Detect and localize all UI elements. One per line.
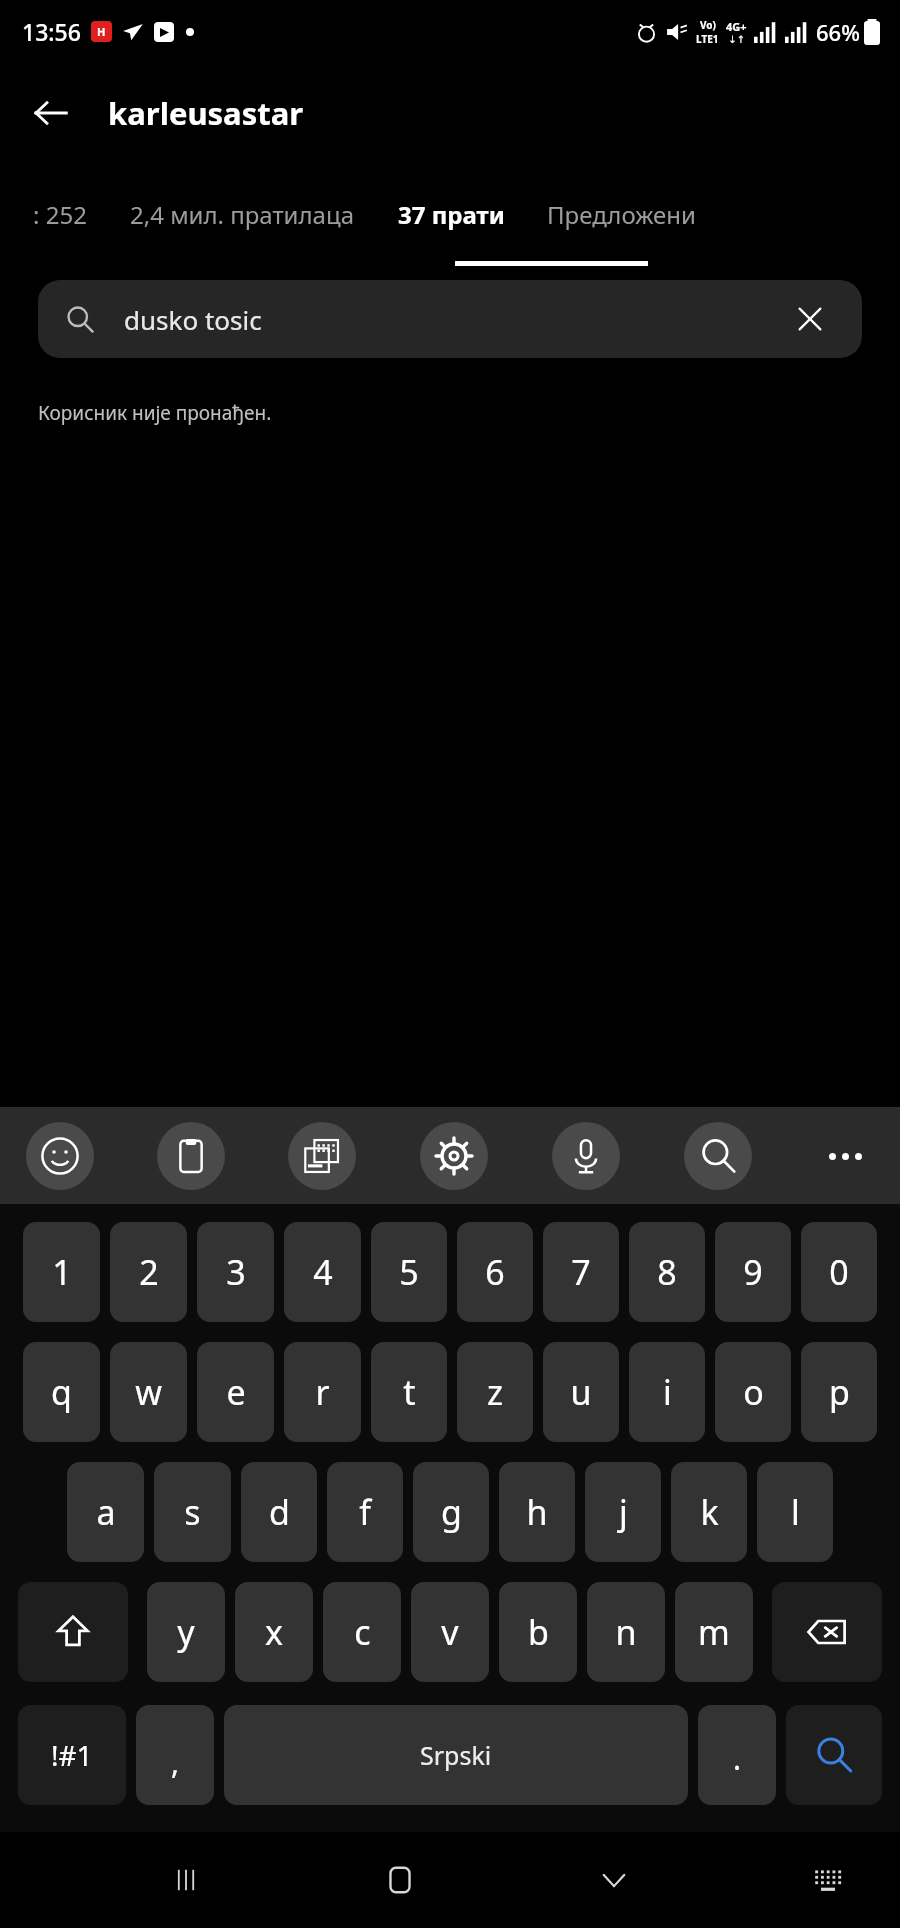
button[interactable]: Keyboard mode: [288, 1122, 356, 1190]
button[interactable]: Recent apps: [150, 1844, 222, 1916]
button[interactable]: 5: [371, 1222, 447, 1322]
button[interactable]: l: [757, 1462, 833, 1562]
button[interactable]: q: [23, 1342, 100, 1442]
button[interactable]: p: [801, 1342, 877, 1442]
staticText: g: [441, 1489, 462, 1535]
button[interactable]: : 252: [0, 163, 120, 266]
button[interactable]: Hide keyboard: [578, 1844, 650, 1916]
staticText: 7: [571, 1249, 591, 1295]
staticText: d: [269, 1489, 290, 1535]
staticText: n: [615, 1609, 637, 1655]
button[interactable]: More options: [816, 1127, 874, 1185]
staticText: Vo): [700, 18, 716, 32]
staticText: 9: [743, 1249, 763, 1295]
staticText: q: [51, 1369, 72, 1415]
staticText: y: [177, 1609, 195, 1655]
button[interactable]: Shift: [18, 1582, 128, 1682]
button[interactable]: f: [327, 1462, 403, 1562]
staticText: p: [829, 1369, 850, 1415]
button[interactable]: Search: [684, 1122, 752, 1190]
staticText: Корисник није пронађен.: [38, 400, 272, 426]
staticText: r: [315, 1369, 330, 1415]
button[interactable]: 0: [801, 1222, 877, 1322]
button[interactable]: o: [715, 1342, 791, 1442]
button[interactable]: 37 прати: [398, 163, 505, 266]
button[interactable]: dusko tosic: [38, 280, 862, 358]
staticText: s: [184, 1489, 201, 1535]
button[interactable]: 7: [543, 1222, 619, 1322]
button[interactable]: 3: [197, 1222, 274, 1322]
staticText: o: [743, 1369, 764, 1415]
button[interactable]: r: [284, 1342, 361, 1442]
staticText: e: [226, 1369, 246, 1415]
staticText: H: [97, 24, 106, 39]
button[interactable]: Settings: [420, 1122, 488, 1190]
staticText: m: [698, 1609, 730, 1655]
button[interactable]: c: [323, 1582, 401, 1682]
staticText: Предложени: [547, 198, 696, 231]
staticText: x: [265, 1609, 283, 1655]
button[interactable]: e: [197, 1342, 274, 1442]
staticText: 66%: [816, 17, 860, 47]
button[interactable]: Back: [18, 80, 84, 146]
button[interactable]: Clear search: [788, 297, 832, 341]
staticText: v: [441, 1609, 459, 1655]
staticText: 37 прати: [398, 198, 505, 231]
button[interactable]: a: [67, 1462, 144, 1562]
staticText: w: [135, 1369, 162, 1415]
button[interactable]: h: [499, 1462, 575, 1562]
button[interactable]: b: [499, 1582, 577, 1682]
button[interactable]: v: [411, 1582, 489, 1682]
button[interactable]: s: [154, 1462, 231, 1562]
button[interactable]: 1: [23, 1222, 100, 1322]
staticText: f: [359, 1489, 371, 1535]
button[interactable]: t: [371, 1342, 447, 1442]
staticText: LTE1: [696, 32, 719, 46]
button[interactable]: 9: [715, 1222, 791, 1322]
staticText: j: [619, 1489, 628, 1535]
button[interactable]: 2,4 мил. пратилаца: [130, 163, 354, 266]
staticText: z: [487, 1369, 503, 1415]
staticText: 5: [399, 1249, 419, 1295]
staticText: ↓↑: [728, 34, 745, 46]
button[interactable]: x: [235, 1582, 313, 1682]
button[interactable]: n: [587, 1582, 665, 1682]
staticText: 0: [829, 1249, 849, 1295]
staticText: 13:56: [22, 16, 81, 47]
button[interactable]: Srpski: [224, 1705, 688, 1805]
staticText: 2: [139, 1249, 159, 1295]
button[interactable]: Emoji: [26, 1122, 94, 1190]
staticText: 6: [485, 1249, 505, 1295]
button[interactable]: Home: [364, 1844, 436, 1916]
button[interactable]: g: [413, 1462, 489, 1562]
button[interactable]: w: [110, 1342, 187, 1442]
button[interactable]: 6: [457, 1222, 533, 1322]
button[interactable]: ,: [136, 1705, 214, 1805]
button[interactable]: 8: [629, 1222, 705, 1322]
button[interactable]: u: [543, 1342, 619, 1442]
button[interactable]: Voice input: [552, 1122, 620, 1190]
button[interactable]: d: [241, 1462, 317, 1562]
button[interactable]: 4: [284, 1222, 361, 1322]
button[interactable]: 2: [110, 1222, 187, 1322]
staticText: l: [791, 1489, 800, 1535]
button[interactable]: Backspace: [772, 1582, 882, 1682]
button[interactable]: !#1: [18, 1705, 126, 1805]
button[interactable]: Search: [786, 1705, 882, 1805]
button[interactable]: z: [457, 1342, 533, 1442]
staticText: dusko tosic: [124, 302, 262, 337]
button[interactable]: Keyboard layout: [792, 1844, 864, 1916]
button[interactable]: .: [698, 1705, 776, 1805]
staticText: 8: [657, 1249, 677, 1295]
button[interactable]: m: [675, 1582, 753, 1682]
staticText: h: [526, 1489, 548, 1535]
button[interactable]: k: [671, 1462, 747, 1562]
button[interactable]: Clipboard: [157, 1122, 225, 1190]
staticText: ,: [171, 1742, 180, 1783]
staticText: 1: [52, 1249, 72, 1295]
button[interactable]: y: [147, 1582, 225, 1682]
button[interactable]: Предложени: [547, 163, 696, 266]
button[interactable]: j: [585, 1462, 661, 1562]
button[interactable]: i: [629, 1342, 705, 1442]
staticText: .: [733, 1738, 742, 1779]
